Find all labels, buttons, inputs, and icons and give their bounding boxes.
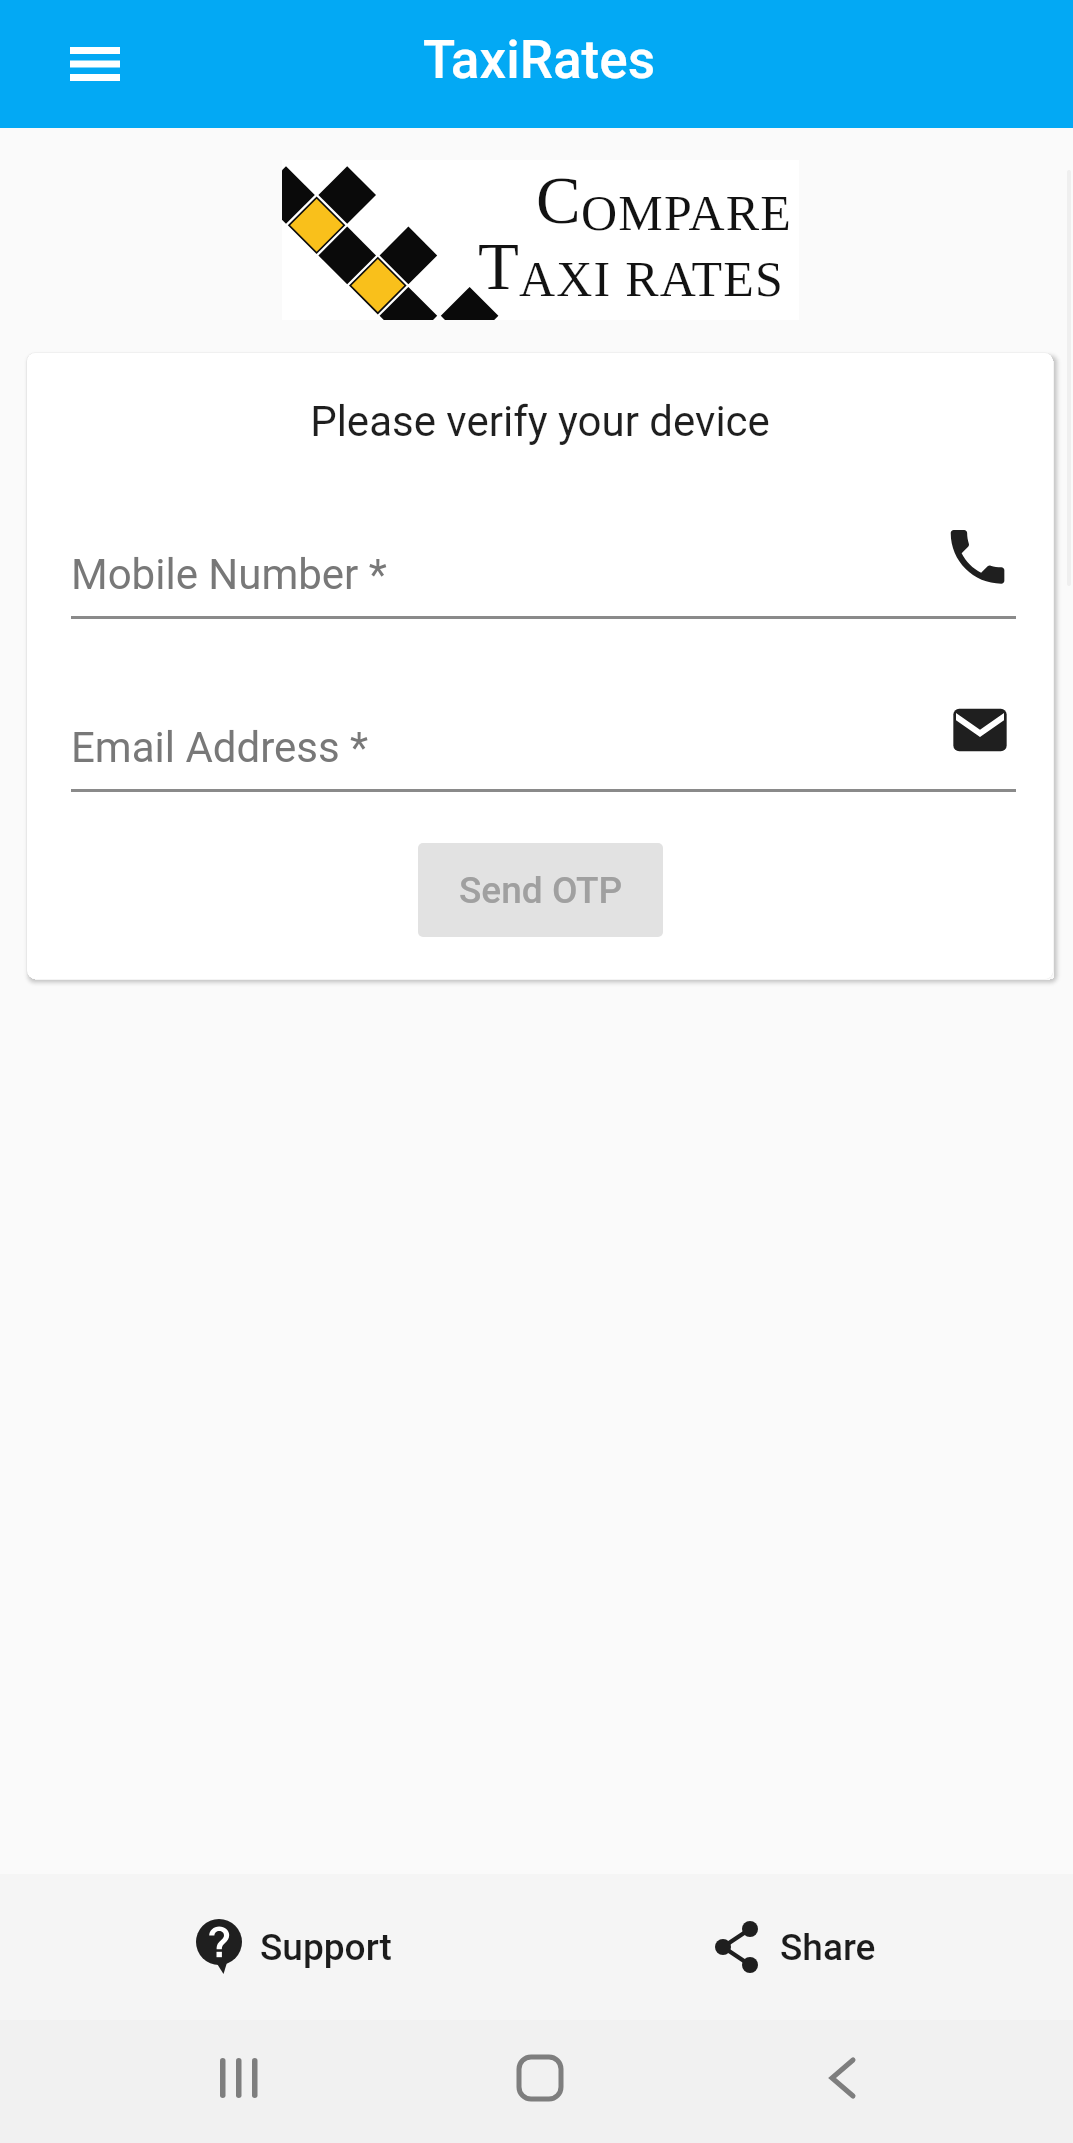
staticText: Mobile Number * bbox=[71, 550, 387, 599]
staticText: C bbox=[536, 163, 581, 237]
staticText: Please verify your device bbox=[27, 397, 1053, 446]
staticText: OMPARE bbox=[581, 185, 792, 240]
staticText: Send OTP bbox=[459, 869, 623, 912]
staticText: T bbox=[478, 229, 519, 303]
button[interactable]: Support bbox=[0, 1874, 536, 2020]
other: Share bbox=[712, 1919, 762, 1975]
staticText: Share bbox=[780, 1926, 876, 1969]
button[interactable]: Send OTP bbox=[418, 843, 663, 937]
staticText: AXI RATES bbox=[519, 251, 784, 306]
staticText: Support bbox=[260, 1926, 392, 1969]
other: Support bbox=[196, 1919, 242, 1975]
staticText: TaxiRates bbox=[423, 29, 656, 91]
button[interactable]: Open navigation menu bbox=[46, 0, 1073, 128]
button[interactable]: Share bbox=[536, 1874, 1073, 2020]
staticText: Email Address * bbox=[71, 723, 369, 772]
